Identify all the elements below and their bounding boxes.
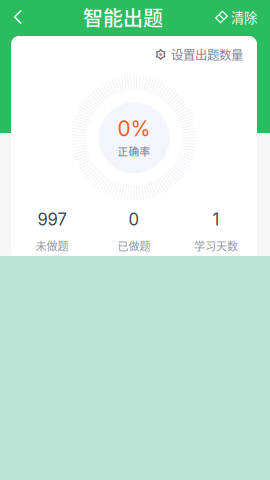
button[interactable]: Back [5,2,31,32]
staticText: 未做题 [35,237,68,253]
staticText: 1 [212,209,219,230]
button[interactable]: 清除 [215,2,257,32]
staticText: 0 [128,209,139,230]
staticText: 正确率 [117,143,150,159]
staticText: 清除 [231,7,257,27]
staticText: 智能出题 [83,2,163,31]
staticText: 997 [37,209,66,230]
staticText: 已做题 [117,237,150,253]
button[interactable]: 设置出题数量 [153,42,245,66]
staticText: 学习天数 [194,237,238,253]
staticText: 0% [117,116,150,141]
staticText: 设置出题数量 [171,45,243,63]
